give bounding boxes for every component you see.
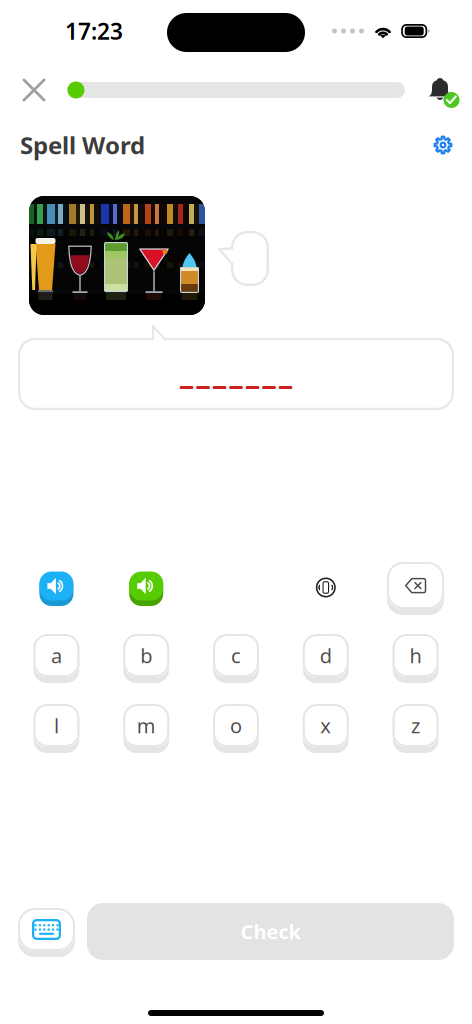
staticText: Check: [240, 918, 300, 945]
staticText: o: [230, 712, 242, 739]
staticText: c: [231, 642, 241, 669]
staticText: m: [137, 712, 156, 739]
button[interactable]: m: [123, 703, 169, 752]
staticText: d: [320, 642, 332, 669]
button[interactable]: c: [213, 633, 259, 682]
staticText: a: [51, 642, 62, 669]
button[interactable]: x: [303, 703, 349, 752]
staticText: 17:23: [65, 16, 123, 46]
button[interactable]: Close: [16, 72, 52, 108]
staticText: l: [54, 712, 59, 739]
staticText: h: [410, 642, 422, 669]
button[interactable]: o: [213, 703, 259, 752]
staticText: Spell Word: [20, 129, 145, 161]
button[interactable]: d: [303, 633, 349, 682]
button[interactable]: Play audio: [33, 563, 79, 612]
button[interactable]: Play slow audio: [123, 563, 169, 612]
staticText: b: [140, 642, 152, 669]
button[interactable]: b: [123, 633, 169, 682]
button[interactable]: l: [33, 703, 79, 752]
button[interactable]: Check: [87, 903, 454, 960]
staticText: z: [411, 712, 420, 739]
button[interactable]: Vibrate: [303, 561, 349, 614]
button[interactable]: Settings: [425, 128, 461, 162]
button[interactable]: Delete: [387, 561, 444, 614]
button[interactable]: h: [393, 633, 439, 682]
button[interactable]: a: [33, 633, 79, 682]
button[interactable]: z: [393, 703, 439, 752]
staticText: x: [320, 712, 331, 739]
button[interactable]: Keyboard: [18, 907, 75, 956]
button[interactable]: Notifications: [422, 72, 458, 108]
